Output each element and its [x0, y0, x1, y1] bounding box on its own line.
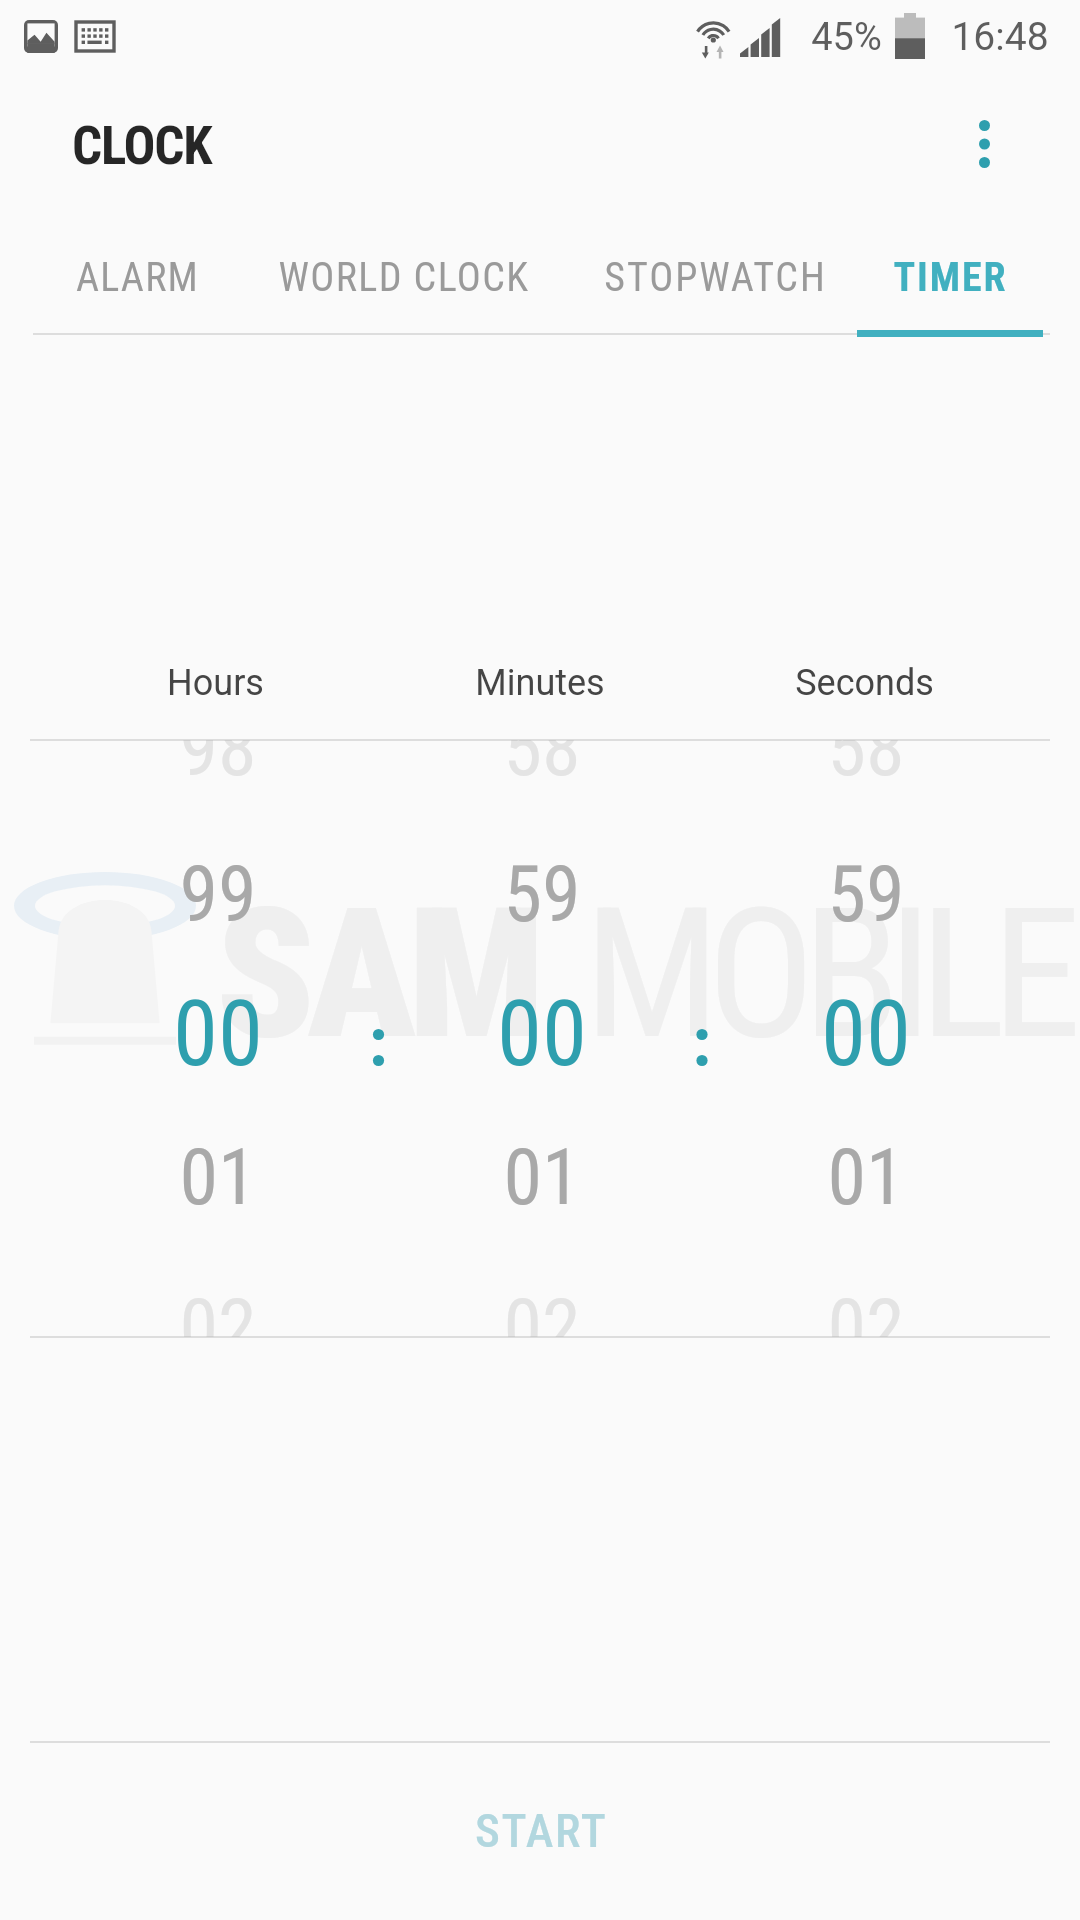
- staticText: 00: [173, 981, 263, 1088]
- staticText: 00: [497, 981, 587, 1088]
- staticText: CLOCK: [72, 115, 212, 177]
- staticText: MOBILE: [584, 869, 1069, 1080]
- staticText: TIMER: [893, 254, 1008, 301]
- staticText: 02: [827, 1282, 905, 1337]
- staticText: 16:48: [951, 14, 1049, 60]
- button[interactable]: WORLD CLOCK: [245, 200, 561, 333]
- staticText: 58: [827, 740, 905, 794]
- staticText: Hours: [167, 662, 264, 704]
- staticText: 01: [179, 1132, 257, 1223]
- button[interactable]: TIMER: [856, 200, 1042, 333]
- staticText: 59: [827, 849, 905, 940]
- button[interactable]: CLOCK: [40, 100, 300, 192]
- staticText: WORLD CLOCK: [278, 254, 530, 301]
- button[interactable]: 58: [412, 740, 672, 1337]
- staticText: 00: [821, 981, 911, 1088]
- staticText: 02: [503, 1282, 581, 1337]
- button[interactable]: 98: [88, 740, 348, 1337]
- staticText: 45%: [811, 15, 882, 60]
- button[interactable]: STOPWATCH: [567, 200, 862, 333]
- staticText: 01: [503, 1132, 581, 1223]
- staticText: 98: [179, 740, 257, 794]
- staticText: START: [475, 1803, 608, 1858]
- staticText: STOPWATCH: [604, 254, 827, 301]
- button[interactable]: More options: [944, 104, 1024, 184]
- staticText: ALARM: [76, 254, 199, 301]
- button[interactable]: START: [0, 1741, 1080, 1920]
- staticText: 02: [179, 1282, 257, 1337]
- staticText: Minutes: [475, 662, 605, 704]
- staticText: 59: [503, 849, 581, 940]
- staticText: SAM: [216, 869, 537, 1080]
- button[interactable]: 58: [736, 740, 996, 1337]
- staticText: 99: [179, 849, 257, 940]
- button[interactable]: ALARM: [30, 200, 243, 333]
- staticText: Seconds: [795, 662, 934, 704]
- staticText: 58: [503, 740, 581, 794]
- staticText: 01: [827, 1132, 905, 1223]
